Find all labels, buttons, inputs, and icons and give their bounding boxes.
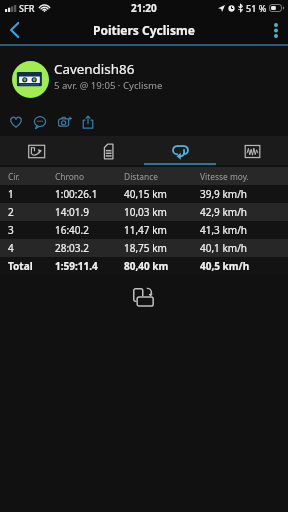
- staticText: 1:00:26.1: [55, 187, 98, 201]
- staticText: 1: [8, 187, 14, 201]
- staticText: 21:20: [131, 1, 157, 15]
- staticText: 42,9 km/h: [200, 205, 248, 219]
- staticText: Vitesse moy.: [200, 171, 249, 182]
- button[interactable]: Total: [0, 257, 288, 275]
- button[interactable]: Comment: [28, 105, 51, 135]
- staticText: 80,40 km: [124, 259, 169, 273]
- staticText: 1:59:11.4: [55, 259, 98, 273]
- button[interactable]: Cir.: [0, 167, 288, 185]
- button[interactable]: Laps: [144, 136, 216, 165]
- button[interactable]: Share: [76, 105, 99, 135]
- staticText: SFR: [19, 2, 35, 14]
- button[interactable]: Map: [0, 136, 72, 165]
- staticText: 11,47 km: [124, 223, 167, 237]
- button[interactable]: Rotate screen: [130, 284, 156, 310]
- button[interactable]: 1: [0, 185, 288, 203]
- button[interactable]: Splits: [72, 136, 144, 165]
- staticText: 18,75 km: [124, 241, 167, 255]
- staticText: 51 %: [246, 2, 267, 14]
- button[interactable]: More options: [264, 16, 288, 44]
- staticText: Total: [8, 259, 33, 273]
- staticText: Distance: [124, 171, 158, 182]
- staticText: Cir.: [8, 171, 20, 182]
- staticText: 16:40.2: [55, 223, 89, 237]
- staticText: 4: [8, 241, 14, 255]
- staticText: 10,03 km: [124, 205, 167, 219]
- button[interactable]: 2: [0, 203, 288, 221]
- staticText: 40,5 km/h: [200, 259, 250, 273]
- staticText: 14:01.9: [55, 205, 89, 219]
- staticText: Poitiers Cyclisme: [93, 22, 195, 38]
- button[interactable]: Back: [0, 16, 28, 44]
- button[interactable]: 3: [0, 221, 288, 239]
- button[interactable]: Cavendish86: [0, 46, 288, 105]
- staticText: 28:03.2: [55, 241, 89, 255]
- button[interactable]: Charts: [216, 136, 288, 165]
- staticText: 5 avr. @ 19:05 · Cyclisme: [54, 79, 163, 92]
- staticText: 3: [8, 223, 14, 237]
- staticText: 2: [8, 205, 14, 219]
- staticText: Chrono: [55, 171, 85, 182]
- staticText: 40,15 km: [124, 187, 167, 201]
- staticText: Cavendish86: [54, 60, 135, 78]
- staticText: 41,3 km/h: [200, 223, 248, 237]
- button[interactable]: 4: [0, 239, 288, 257]
- button[interactable]: Like: [4, 105, 27, 135]
- staticText: 39,9 km/h: [200, 187, 248, 201]
- staticText: 40,1 km/h: [200, 241, 248, 255]
- button[interactable]: Add photo: [53, 105, 76, 135]
